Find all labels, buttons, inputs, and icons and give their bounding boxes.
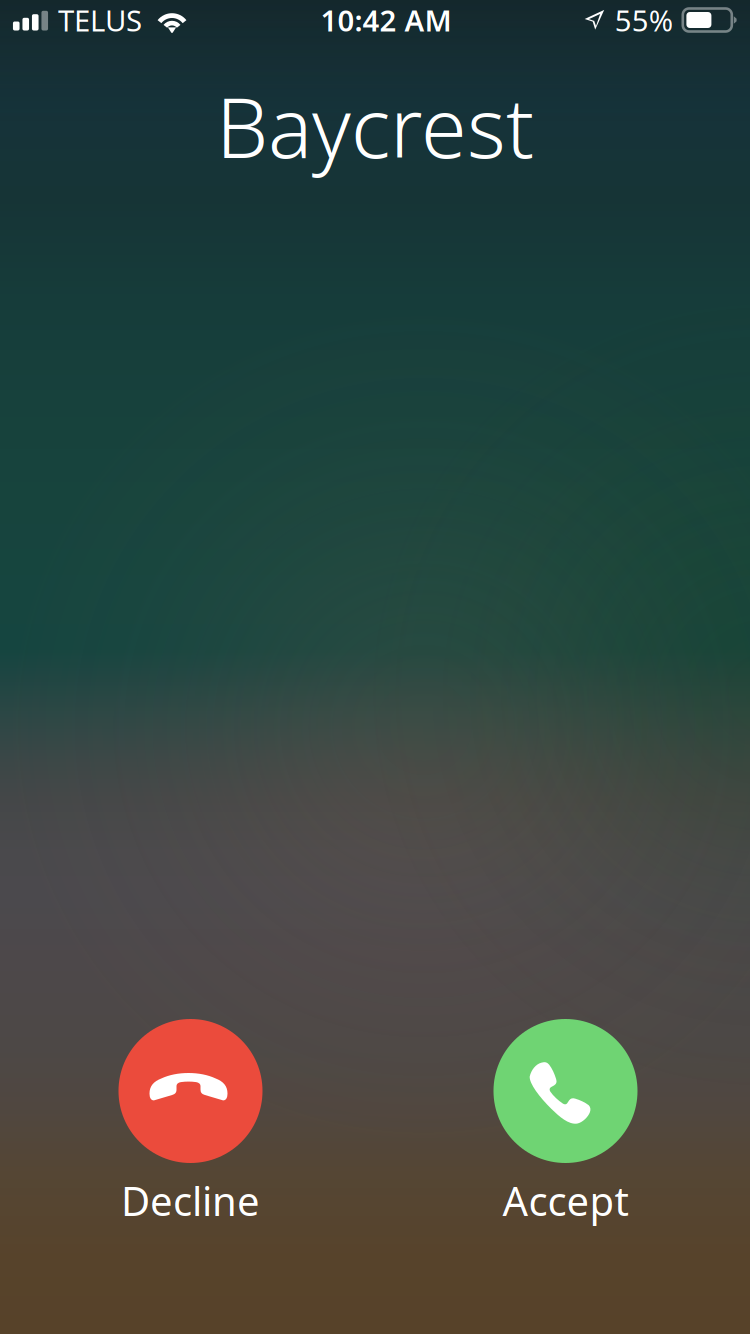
staticText: TELUS: [58, 0, 142, 39]
staticText: 10:42 AM: [320, 0, 451, 39]
staticText: Decline: [121, 1174, 260, 1227]
button[interactable]: Accept: [493, 1019, 637, 1227]
staticText: 55%: [615, 0, 673, 39]
button[interactable]: Decline: [118, 1019, 262, 1227]
staticText: Accept: [502, 1174, 628, 1227]
staticText: Baycrest: [216, 71, 534, 181]
